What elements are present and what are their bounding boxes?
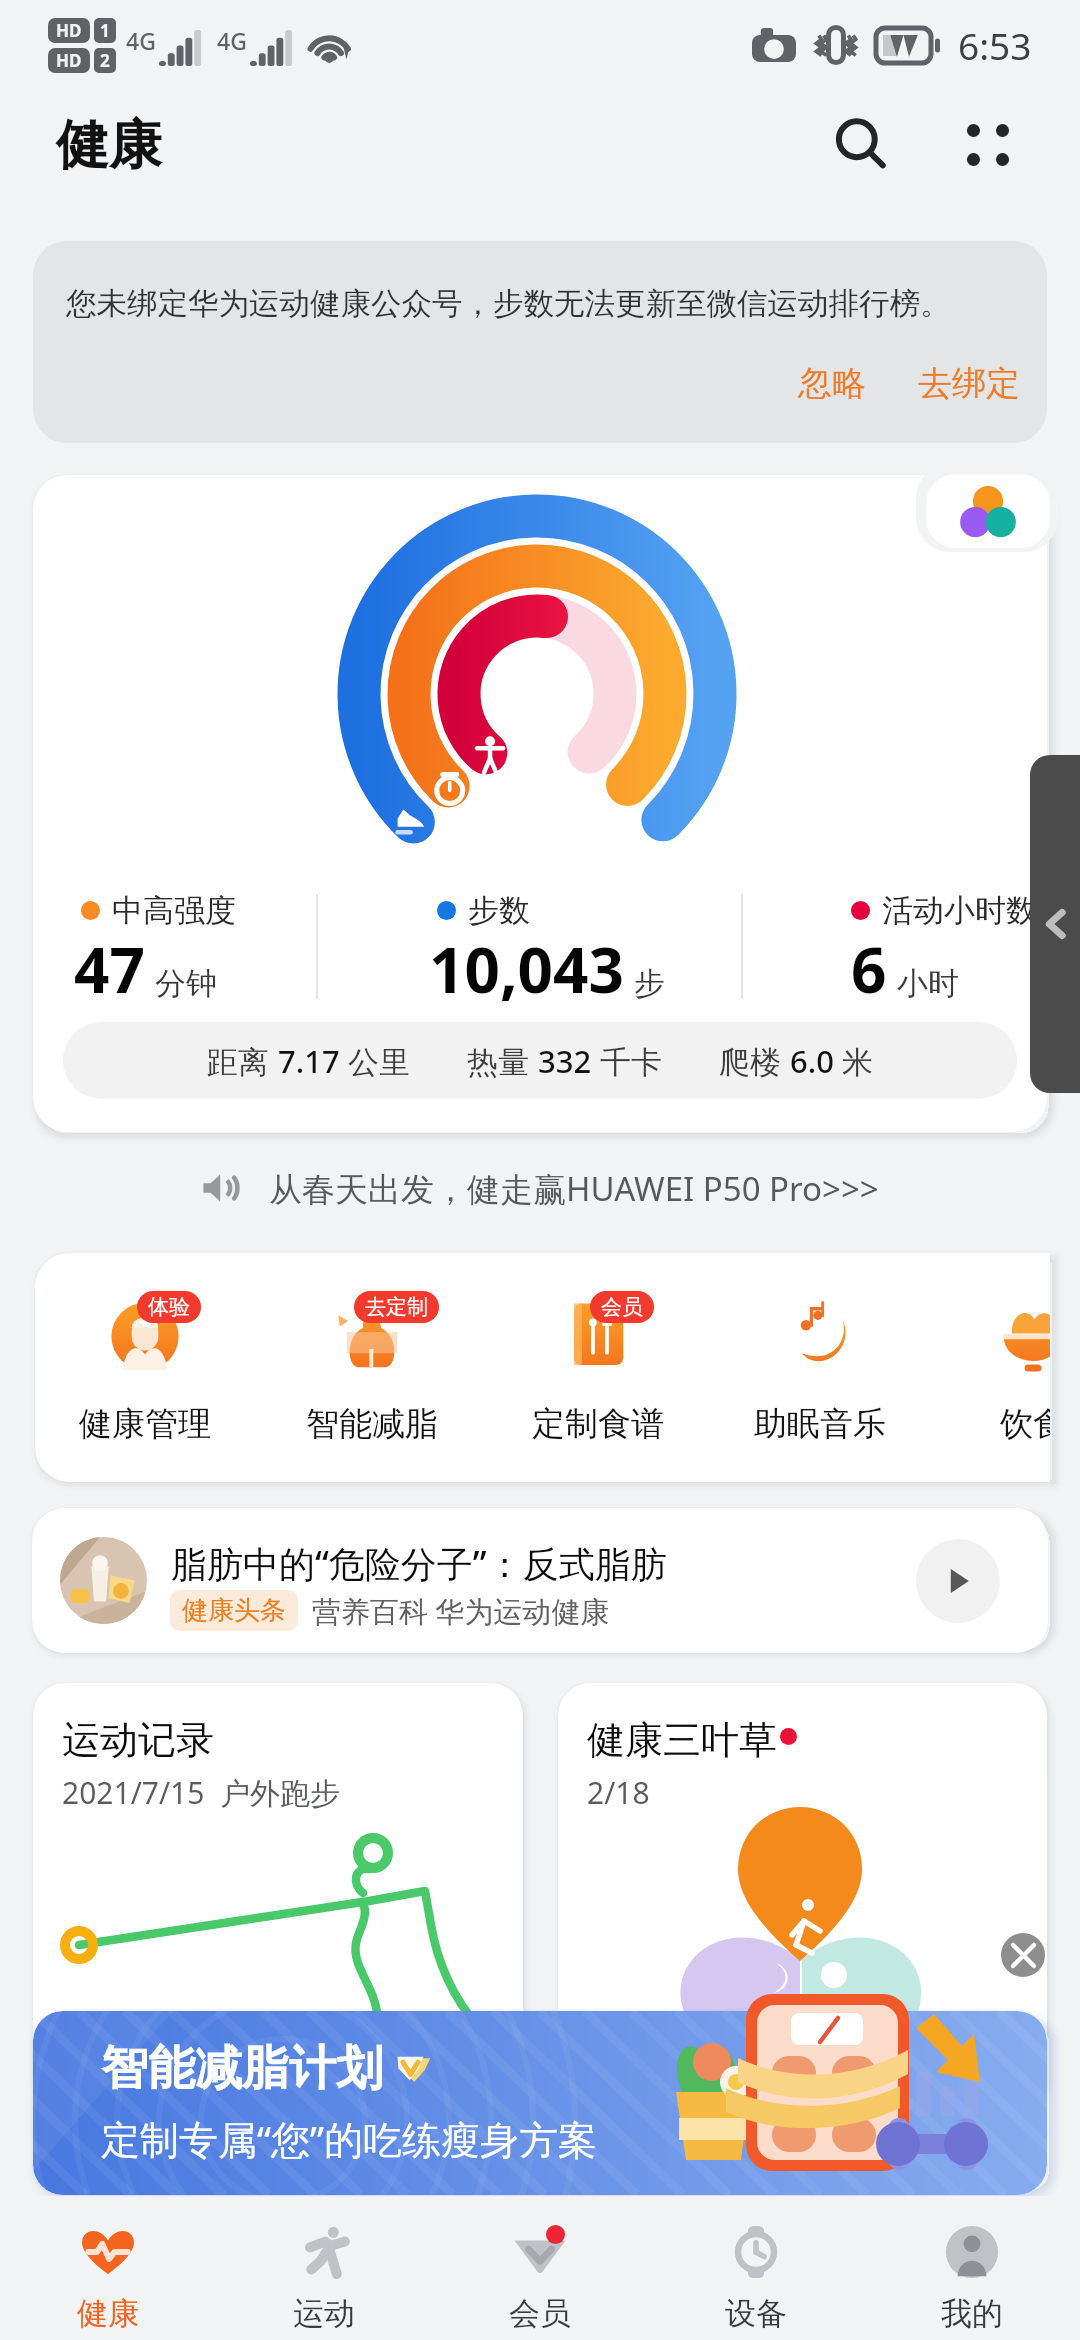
button[interactable]: 从春天出发，健走赢HUAWEI P50 Pro>>> [0, 1160, 1080, 1216]
button[interactable]: 您未绑定华为运动健康公众号，步数无法更新至微信运动排行榜。 [33, 241, 1047, 443]
staticText: 步 [634, 964, 665, 1003]
button[interactable]: 脂肪中的“危险分子”：反式脂肪 [32, 1508, 1048, 1653]
button[interactable]: 饮食 [953, 1265, 1050, 1465]
button[interactable]: 健康管理 [65, 1265, 225, 1465]
staticText: 去定制 [365, 1294, 428, 1320]
staticText: 健康 [77, 2294, 139, 2333]
staticText: 运动记录 [62, 1716, 214, 1764]
staticText: 运动 [293, 2294, 355, 2333]
staticText: 脂肪中的“危险分子”：反式脂肪 [171, 1539, 667, 1588]
staticText: 定制专属“您”的吃练瘦身方案 [101, 2112, 598, 2165]
button[interactable]: 运动 [216, 2196, 432, 2340]
button[interactable]: 智能减脂计划 [33, 2011, 1047, 2195]
staticText: 6:53 [958, 20, 1032, 70]
staticText: 10,043 [429, 927, 624, 1011]
staticText: 热量 [467, 1040, 538, 1082]
button[interactable]: 会员 [432, 2196, 648, 2340]
staticText: 健康头条 [182, 1594, 286, 1627]
staticText: 您未绑定华为运动健康公众号，步数无法更新至微信运动排行榜。 [66, 285, 951, 323]
staticText: 米 [834, 1040, 874, 1082]
button[interactable]: Close banner [1001, 1933, 1045, 1977]
staticText: 1 [100, 19, 110, 42]
button[interactable]: 定制食谱 [518, 1265, 678, 1465]
staticText: 设备 [725, 2294, 787, 2333]
staticText: 公里 [340, 1040, 411, 1082]
staticText: 智能减脂 [306, 1403, 438, 1445]
button[interactable]: Open side panel [1030, 755, 1080, 1093]
staticText: 体验 [148, 1294, 190, 1320]
button[interactable]: 助眠音乐 [740, 1265, 900, 1465]
staticText: 会员 [509, 2294, 571, 2333]
staticText: 会员 [601, 1294, 643, 1320]
staticText: 定制食谱 [532, 1403, 664, 1445]
staticText: 千卡 [592, 1040, 663, 1082]
staticText: 去绑定 [918, 362, 1020, 405]
button[interactable]: 距离 [63, 1022, 1017, 1099]
staticText: 健康管理 [79, 1403, 211, 1445]
staticText: 6 [851, 927, 887, 1011]
staticText: 6.0 [790, 1040, 834, 1082]
staticText: 健康三叶草 [587, 1716, 777, 1764]
staticText: 助眠音乐 [754, 1403, 886, 1445]
button[interactable]: AI assistant [926, 474, 1050, 548]
staticText: 爬楼 [719, 1040, 790, 1082]
button[interactable]: 健康三叶草 [558, 1683, 1047, 2103]
button[interactable]: 去绑定 [906, 352, 1032, 415]
staticText: 2 [100, 49, 110, 72]
staticText: 从春天出发，健走赢HUAWEI P50 Pro>>> [269, 1166, 879, 1211]
staticText: 中高强度 [112, 891, 236, 930]
staticText: HD [56, 19, 82, 42]
staticText: 47 [74, 927, 145, 1011]
staticText: HD [56, 49, 82, 72]
staticText: 活动小时数 [882, 891, 1037, 930]
button[interactable]: More options [946, 103, 1030, 187]
staticText: 距离 [207, 1040, 278, 1082]
staticText: 小时 [897, 964, 959, 1003]
staticText: 2/18 [587, 1772, 650, 1813]
button[interactable]: 中高强度 [33, 475, 1047, 1132]
staticText: 分钟 [155, 964, 217, 1003]
staticText: 我的 [941, 2294, 1003, 2333]
button[interactable]: 健康 [0, 2196, 216, 2340]
button[interactable]: 智能减脂 [292, 1265, 452, 1465]
button[interactable]: 设备 [648, 2196, 864, 2340]
staticText: 智能减脂计划 [101, 2039, 383, 2098]
staticText: 忽略 [798, 362, 866, 405]
button[interactable]: Search [820, 103, 904, 187]
staticText: 营养百科 华为运动健康 [312, 1591, 610, 1631]
staticText: 步数 [468, 891, 530, 930]
staticText: 4G [126, 25, 156, 56]
button[interactable]: Play [916, 1539, 1000, 1623]
staticText: 健康 [56, 112, 162, 179]
staticText: 332 [538, 1040, 592, 1082]
staticText: 7.17 [278, 1040, 340, 1082]
staticText: 4G [217, 25, 247, 56]
staticText: 饮食 [1000, 1403, 1050, 1445]
staticText: 2021/7/15 户外跑步 [62, 1772, 341, 1813]
button[interactable]: 忽略 [786, 352, 878, 415]
button[interactable]: 运动记录 [33, 1683, 523, 2103]
button[interactable]: 我的 [864, 2196, 1080, 2340]
